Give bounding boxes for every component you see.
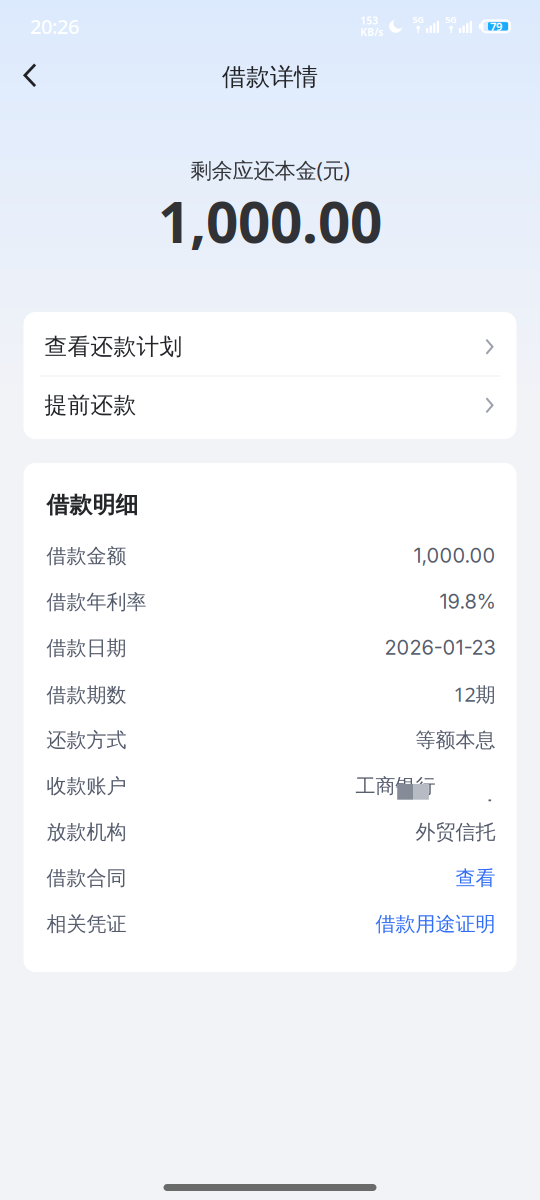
button[interactable]: 查看 (455, 865, 495, 891)
staticText: 相关凭证 (46, 911, 126, 937)
button[interactable]: 查看还款计划 (23, 318, 516, 375)
staticText: 借款日期 (46, 635, 126, 661)
staticText: 153 (360, 14, 378, 27)
button[interactable]: 返回 (6, 51, 54, 99)
staticText: 剩余应还本金(元) (190, 155, 349, 185)
staticText: 工商银行 (355, 773, 435, 799)
button[interactable]: 提前还款 (23, 376, 516, 434)
staticText: KB/s (360, 25, 383, 39)
staticText: 19.8% (439, 589, 495, 613)
button[interactable]: 借款用途证明 (375, 911, 495, 937)
staticText: 借款用途证明 (375, 911, 495, 937)
staticText: 1,000.00 (158, 182, 382, 260)
staticText: 79 (490, 19, 502, 34)
staticText: 还款方式 (46, 727, 126, 753)
staticText: 5G (412, 13, 424, 26)
staticText: 借款金额 (46, 543, 126, 569)
staticText: 借款明细 (46, 491, 138, 519)
staticText: 等额本息 (415, 727, 495, 753)
staticText: 20:26 (30, 13, 79, 40)
staticText: 借款合同 (46, 865, 126, 891)
staticText: 外贸信托 (415, 819, 495, 845)
staticText: 借款期数 (46, 682, 126, 708)
staticText: 12期 (453, 680, 495, 707)
staticText: 提前还款 (44, 391, 136, 420)
staticText: 5G (445, 13, 457, 26)
staticText: 借款年利率 (46, 589, 146, 615)
staticText: 2026-01-23 (384, 635, 495, 659)
staticText: 1,000.00 (413, 543, 495, 567)
staticText: 放款机构 (46, 819, 126, 845)
staticText: 收款账户 (46, 773, 126, 799)
staticText: 借款详情 (222, 62, 318, 92)
staticText: 查看还款计划 (44, 332, 182, 361)
staticText: 查看 (455, 865, 495, 891)
